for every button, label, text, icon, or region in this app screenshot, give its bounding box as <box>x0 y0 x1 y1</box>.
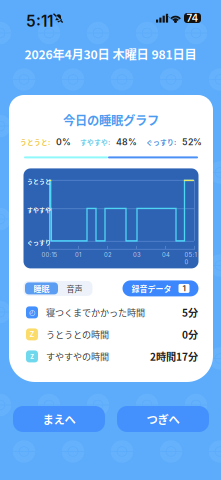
staticText: z <box>30 352 34 361</box>
staticText: すやすや: <box>80 137 110 147</box>
staticText: 0% <box>56 137 71 147</box>
staticText: 00:15 <box>41 251 57 258</box>
staticText: 0分 <box>182 327 198 342</box>
staticText: ぐっすり: <box>146 137 176 147</box>
staticText: 2時間17分 <box>150 349 198 364</box>
staticText: 04 <box>162 251 170 258</box>
button[interactable]: ◴ <box>9 301 213 323</box>
staticText: 5分 <box>182 305 198 320</box>
staticText: 1 <box>182 284 185 293</box>
staticText: すやすや <box>27 205 51 214</box>
staticText: つぎへ <box>146 411 179 427</box>
staticText: Z <box>29 330 34 339</box>
staticText: すやすやの時間 <box>46 350 109 363</box>
staticText: 01 <box>75 251 81 258</box>
button[interactable]: 睡眠 <box>25 282 58 294</box>
staticText: 今日の睡眠グラフ <box>63 111 159 129</box>
staticText: うとうと: <box>20 137 50 147</box>
staticText: 05:10 <box>184 251 196 266</box>
staticText: 02 <box>104 251 112 258</box>
staticText: 48% <box>116 137 137 147</box>
staticText: うとうとの時間 <box>46 328 109 341</box>
button[interactable]: 音声 <box>58 282 91 294</box>
staticText: 寝つくまでかかった時間 <box>46 306 145 319</box>
staticText: 2026年4月30日 木曜日 981日目 <box>24 45 196 63</box>
staticText: 03 <box>133 251 141 258</box>
staticText: まえへ <box>42 411 75 427</box>
staticText: 74 <box>186 12 198 24</box>
staticText: ◴ <box>29 308 35 317</box>
staticText: 52% <box>182 137 202 147</box>
staticText: ぐっすり <box>27 238 51 246</box>
staticText: 録音データ <box>131 283 171 294</box>
button[interactable]: まえへ <box>13 406 105 432</box>
staticText: 睡眠 <box>33 283 49 294</box>
button[interactable]: Z <box>9 323 213 345</box>
button[interactable]: つぎへ <box>117 406 209 432</box>
button[interactable]: z <box>9 345 213 367</box>
staticText: 5:11 <box>26 12 53 31</box>
staticText: 音声 <box>66 283 82 294</box>
button[interactable]: 録音データ <box>122 280 198 296</box>
staticText: うとうと <box>27 177 51 185</box>
